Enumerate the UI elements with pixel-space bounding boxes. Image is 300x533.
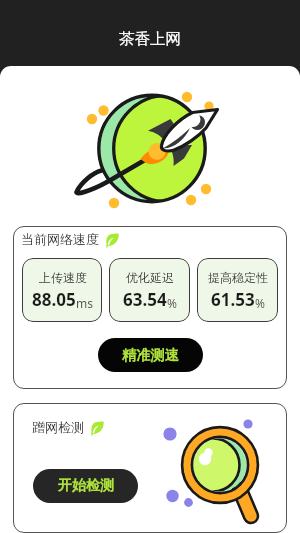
staticText: 上传速度 bbox=[39, 270, 87, 285]
button[interactable]: 提高稳定性 bbox=[197, 258, 278, 322]
staticText: 当前网络速度 bbox=[21, 231, 99, 247]
staticText: % bbox=[255, 295, 265, 311]
staticText: 开始检测 bbox=[58, 477, 114, 495]
staticText: ms bbox=[76, 295, 93, 311]
staticText: 优化延迟 bbox=[126, 270, 174, 285]
button[interactable]: 精准测速 bbox=[98, 338, 203, 372]
staticText: 88.05 bbox=[32, 288, 76, 311]
staticText: 精准测速 bbox=[122, 346, 179, 364]
staticText: 提高稳定性 bbox=[208, 270, 268, 285]
staticText: 63.54 bbox=[123, 288, 167, 311]
staticText: 蹭网检测 bbox=[32, 419, 84, 435]
staticText: % bbox=[167, 295, 177, 311]
staticText: 茶香上网 bbox=[119, 29, 181, 49]
button[interactable]: 上传速度 bbox=[22, 258, 102, 322]
button[interactable]: 优化延迟 bbox=[109, 258, 190, 322]
button[interactable]: 开始检测 bbox=[33, 469, 138, 503]
staticText: 61.53 bbox=[211, 288, 255, 311]
